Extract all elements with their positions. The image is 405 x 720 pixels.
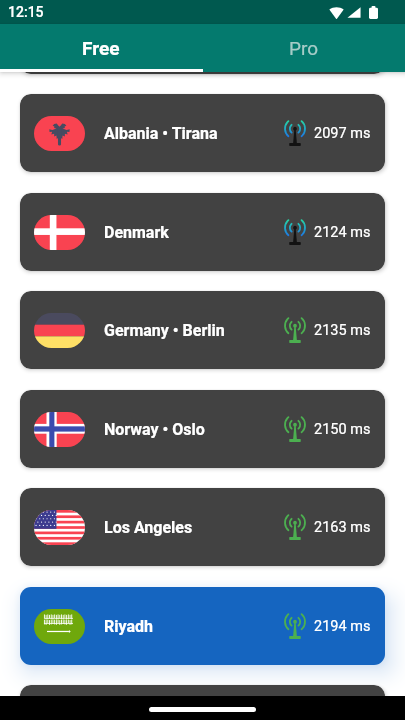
button[interactable]: Free xyxy=(0,24,202,72)
staticText: 2194 ms xyxy=(314,618,371,635)
staticText: Norway • Oslo xyxy=(104,420,205,439)
button[interactable]: Pro xyxy=(202,24,405,72)
button[interactable]: Seoul xyxy=(20,685,385,720)
staticText: 2163 ms xyxy=(314,519,371,536)
button[interactable]: Denmark xyxy=(20,193,385,271)
staticText: 12:15 xyxy=(8,4,44,20)
button[interactable]: Germany • Berlin xyxy=(20,291,385,369)
button[interactable]: Albania • Tirana xyxy=(20,94,385,172)
staticText: Free xyxy=(82,37,120,59)
button[interactable]: Los Angeles xyxy=(20,488,385,566)
staticText: 2124 ms xyxy=(314,224,371,241)
staticText: Germany • Berlin xyxy=(104,321,225,340)
staticText: Albania • Tirana xyxy=(104,124,218,143)
button[interactable]: Norway • Oslo xyxy=(20,390,385,468)
staticText: 2097 ms xyxy=(314,125,371,142)
staticText: Denmark xyxy=(104,223,169,242)
button[interactable]: Riyadh xyxy=(20,587,385,665)
staticText: Pro xyxy=(289,37,319,59)
staticText: Los Angeles xyxy=(104,518,193,537)
button[interactable]: Albania • Tirana xyxy=(20,0,385,74)
staticText: 2135 ms xyxy=(314,322,371,339)
staticText: Riyadh xyxy=(104,617,153,636)
staticText: 2150 ms xyxy=(314,421,371,438)
